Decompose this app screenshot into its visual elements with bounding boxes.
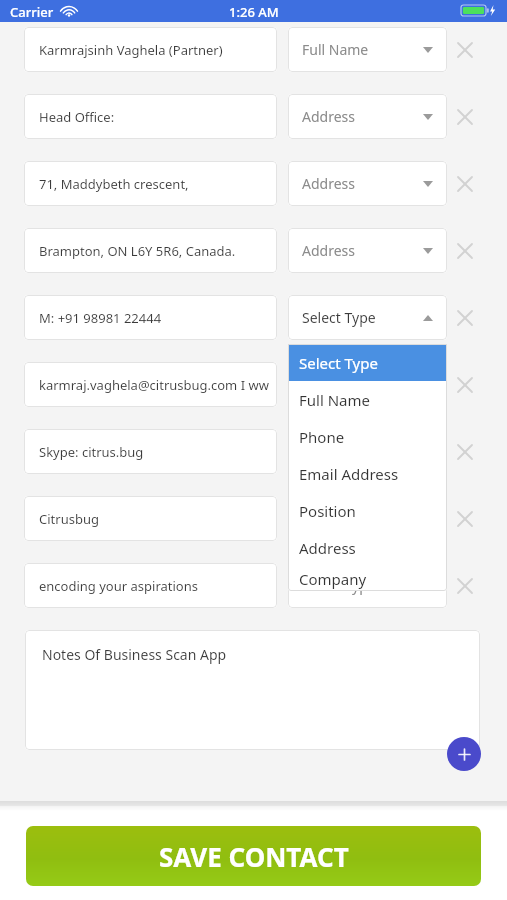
button[interactable]: Remove field bbox=[452, 37, 477, 62]
button[interactable]: Address bbox=[288, 529, 447, 566]
button[interactable]: Add field bbox=[447, 737, 481, 771]
button[interactable]: Full Name bbox=[288, 27, 447, 72]
button[interactable]: Remove field bbox=[452, 506, 477, 531]
button[interactable]: Select Type bbox=[288, 429, 447, 474]
button[interactable]: Remove field bbox=[452, 573, 477, 598]
button[interactable]: 71, Maddybeth crescent, bbox=[24, 161, 277, 206]
button[interactable]: Remove field bbox=[452, 305, 477, 330]
button[interactable]: Brampton, ON L6Y 5R6, Canada. bbox=[24, 228, 277, 273]
staticText: Address bbox=[302, 174, 355, 193]
button[interactable]: Karmrajsinh Vaghela (Partner) bbox=[24, 27, 277, 72]
staticText: Address bbox=[299, 538, 356, 558]
button[interactable]: Select Type bbox=[288, 496, 447, 541]
button[interactable]: Select Type bbox=[288, 344, 447, 381]
staticText: Notes Of Business Scan App bbox=[42, 645, 227, 664]
button[interactable]: Remove field bbox=[452, 171, 477, 196]
button[interactable]: Position bbox=[288, 492, 447, 529]
staticText: Position bbox=[299, 501, 356, 521]
button[interactable]: Select Type bbox=[288, 295, 447, 340]
button[interactable]: Citrusbug bbox=[24, 496, 277, 541]
button[interactable]: Phone bbox=[288, 418, 447, 455]
staticText: Karmrajsinh Vaghela (Partner) bbox=[39, 41, 223, 59]
button[interactable]: karmraj.vaghela@citrusbug.com I ww bbox=[24, 362, 277, 407]
staticText: M: +91 98981 22444 bbox=[39, 309, 162, 327]
button[interactable]: Select Type bbox=[288, 362, 447, 407]
button[interactable]: Remove field bbox=[452, 104, 477, 129]
staticText: Company bbox=[299, 569, 367, 589]
button[interactable]: Head Office: bbox=[24, 94, 277, 139]
button[interactable]: Select Type bbox=[288, 563, 447, 608]
staticText: Citrusbug bbox=[39, 510, 99, 528]
staticText: Head Office: bbox=[39, 108, 115, 126]
button[interactable]: SAVE CONTACT bbox=[26, 826, 481, 886]
button[interactable]: Address bbox=[288, 161, 447, 206]
button[interactable]: M: +91 98981 22444 bbox=[24, 295, 277, 340]
staticText: Select Type bbox=[302, 308, 376, 327]
staticText: 1:26 AM bbox=[229, 3, 279, 21]
staticText: Skype: citrus.bug bbox=[39, 443, 144, 461]
button[interactable]: encoding your aspirations bbox=[24, 563, 277, 608]
staticText: 71, Maddybeth crescent, bbox=[39, 175, 189, 193]
button[interactable]: Remove field bbox=[452, 372, 477, 397]
staticText: Select Type bbox=[302, 375, 376, 394]
button[interactable]: Address bbox=[288, 94, 447, 139]
button[interactable]: Company bbox=[288, 566, 447, 591]
staticText: SAVE CONTACT bbox=[159, 839, 349, 874]
button[interactable]: Full Name bbox=[288, 381, 447, 418]
staticText: Address bbox=[302, 241, 355, 260]
staticText: encoding your aspirations bbox=[39, 577, 198, 595]
button[interactable]: Skype: citrus.bug bbox=[24, 429, 277, 474]
staticText: Select Type bbox=[302, 442, 376, 461]
staticText: Address bbox=[302, 107, 355, 126]
button[interactable]: Remove field bbox=[452, 439, 477, 464]
staticText: Email Address bbox=[299, 464, 399, 484]
staticText: Select Type bbox=[302, 509, 376, 528]
staticText: Carrier bbox=[10, 3, 54, 21]
button[interactable]: Address bbox=[288, 228, 447, 273]
staticText: Full Name bbox=[299, 390, 370, 410]
staticText: karmraj.vaghela@citrusbug.com I ww bbox=[39, 376, 269, 394]
staticText: Select Type bbox=[302, 576, 376, 595]
button[interactable]: Email Address bbox=[288, 455, 447, 492]
staticText: Phone bbox=[299, 427, 345, 447]
staticText: Select Type bbox=[299, 353, 378, 373]
staticText: Full Name bbox=[302, 40, 369, 59]
button[interactable]: Remove field bbox=[452, 238, 477, 263]
staticText: Brampton, ON L6Y 5R6, Canada. bbox=[39, 242, 236, 260]
button[interactable]: Notes Of Business Scan App bbox=[25, 630, 480, 750]
